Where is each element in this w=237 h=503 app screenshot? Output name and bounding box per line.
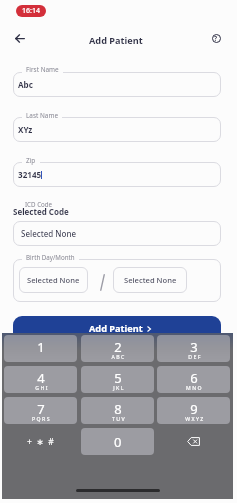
button[interactable]: Abc — [13, 72, 221, 97]
staticText: 7 — [37, 400, 45, 418]
staticText: WXYZ — [185, 415, 205, 422]
button[interactable]: Add Patient — [13, 316, 221, 350]
staticText: TUV — [112, 415, 126, 422]
staticText: 2 — [114, 338, 122, 356]
staticText: Selected None — [21, 228, 77, 239]
staticText: Selected Code — [13, 206, 69, 217]
staticText: Selected None — [27, 275, 80, 285]
staticText: Zip — [26, 156, 36, 165]
button[interactable]: Help — [204, 26, 228, 50]
button[interactable]: 7 — [4, 397, 77, 424]
staticText: ? — [214, 34, 218, 43]
staticText: 5 — [114, 369, 122, 387]
button[interactable]: Back — [7, 26, 32, 51]
button[interactable]: 2 — [81, 335, 154, 362]
button[interactable]: 32145 — [13, 162, 221, 187]
button[interactable]: 1 — [4, 335, 77, 362]
button[interactable]: 9 — [157, 397, 230, 424]
staticText: 4 — [37, 369, 45, 387]
button[interactable]: 6 — [157, 366, 230, 393]
staticText: Birth Day/Month — [26, 253, 75, 261]
staticText: 0 — [114, 433, 122, 451]
button[interactable]: + ∗ # — [4, 428, 77, 455]
staticText: GHI — [35, 384, 49, 391]
staticText: Add Patient — [89, 34, 143, 47]
staticText: Last Name — [26, 111, 58, 120]
staticText: 6 — [190, 369, 198, 387]
button[interactable]: Selected None — [13, 221, 221, 246]
staticText: First Name — [26, 65, 59, 74]
staticText: 16:14 — [22, 6, 40, 16]
staticText: ICD Code — [25, 200, 53, 208]
button[interactable]: 4 — [4, 366, 77, 393]
staticText: MNO — [186, 384, 203, 391]
staticText: DEF — [188, 353, 202, 360]
staticText: Abc — [18, 79, 33, 90]
staticText: 3 — [190, 338, 198, 356]
button[interactable]: 3 — [157, 335, 230, 362]
staticText: Selected None — [124, 275, 177, 285]
staticText: + ∗ # — [27, 436, 55, 448]
staticText: Add Patient — [89, 322, 143, 335]
staticText: 32145 — [18, 169, 42, 180]
staticText: 9 — [190, 400, 198, 418]
button[interactable]: Selected None — [113, 267, 187, 293]
button[interactable]: Selected None — [19, 267, 88, 293]
staticText: PQRS — [32, 415, 51, 422]
staticText: 1 — [37, 338, 45, 356]
staticText: ABC — [111, 353, 126, 360]
button[interactable]: XYz — [13, 117, 221, 142]
staticText: XYz — [18, 124, 33, 135]
button[interactable]: Backspace — [157, 428, 230, 455]
button[interactable]: 8 — [81, 397, 154, 424]
staticText: JKL — [113, 384, 125, 391]
button[interactable]: 5 — [81, 366, 154, 393]
staticText: 8 — [114, 400, 122, 418]
button[interactable]: 0 — [81, 428, 154, 455]
